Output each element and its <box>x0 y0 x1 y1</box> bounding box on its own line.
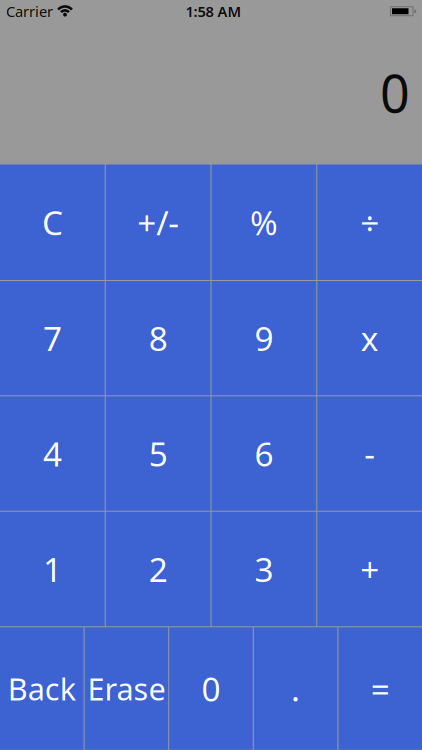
button[interactable]: 6 <box>211 396 316 511</box>
staticText: x <box>361 316 379 360</box>
staticText: Carrier <box>6 1 53 21</box>
staticText: 0 <box>380 58 410 127</box>
button[interactable]: C <box>0 164 105 280</box>
button[interactable]: - <box>317 396 422 511</box>
staticText: . <box>291 666 300 711</box>
staticText: 1 <box>43 547 62 591</box>
staticText: 7 <box>43 316 62 360</box>
staticText: Back <box>8 668 76 709</box>
staticText: - <box>364 431 375 476</box>
button[interactable]: 7 <box>0 281 105 395</box>
staticText: 0 <box>201 666 220 711</box>
staticText: = <box>371 666 390 711</box>
staticText: 4 <box>43 431 62 476</box>
button[interactable]: Back <box>0 627 84 750</box>
button[interactable]: 8 <box>106 281 211 395</box>
button[interactable]: % <box>211 164 316 280</box>
staticText: Erase <box>87 668 165 709</box>
button[interactable]: + <box>317 512 422 626</box>
button[interactable]: 0 <box>169 627 253 750</box>
staticText: + <box>360 547 379 591</box>
staticText: 8 <box>149 316 168 360</box>
staticText: 1:58 AM <box>185 1 241 21</box>
button[interactable]: +/- <box>106 164 211 280</box>
staticText: 9 <box>254 316 273 360</box>
staticText: 5 <box>149 431 168 476</box>
staticText: 3 <box>254 547 273 591</box>
button[interactable]: = <box>338 627 422 750</box>
button[interactable]: 9 <box>211 281 316 395</box>
button[interactable]: . <box>254 627 337 750</box>
staticText: 2 <box>149 547 168 591</box>
staticText: +/- <box>137 200 179 244</box>
button[interactable]: 4 <box>0 396 105 511</box>
button[interactable]: Erase <box>85 627 168 750</box>
staticText: 6 <box>254 431 273 476</box>
staticText: ÷ <box>360 200 379 244</box>
button[interactable]: 5 <box>106 396 211 511</box>
button[interactable]: 2 <box>106 512 211 626</box>
button[interactable]: x <box>317 281 422 395</box>
staticText: % <box>250 200 278 244</box>
button[interactable]: 1 <box>0 512 105 626</box>
button[interactable]: ÷ <box>317 164 422 280</box>
staticText: C <box>42 200 63 244</box>
button[interactable]: 3 <box>211 512 316 626</box>
